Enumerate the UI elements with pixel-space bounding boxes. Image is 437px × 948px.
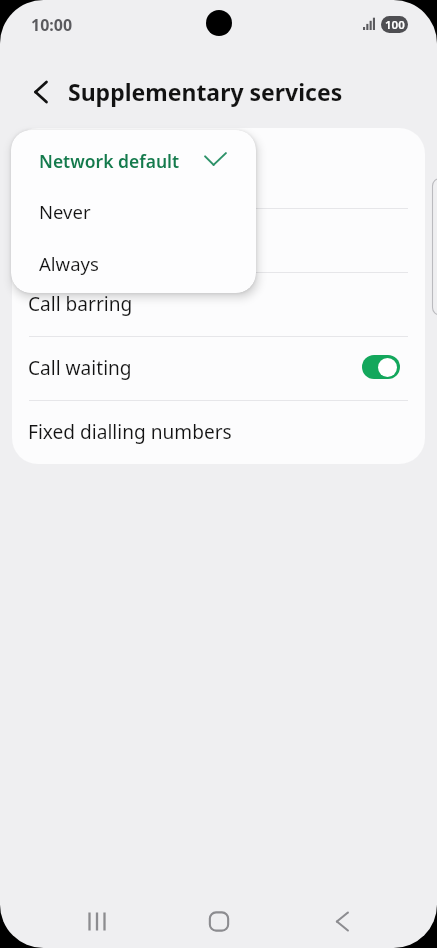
- staticText: Never: [39, 199, 91, 224]
- staticText: Call barring: [28, 291, 133, 317]
- staticText: 100: [385, 17, 405, 33]
- button[interactable]: Home: [197, 894, 241, 948]
- staticText: Fixed dialling numbers: [28, 419, 232, 445]
- button[interactable]: Back: [320, 894, 364, 948]
- button[interactable]: Navigate up: [22, 74, 58, 110]
- button[interactable]: Never: [11, 186, 256, 237]
- staticText: Caller ID: [28, 163, 105, 189]
- button[interactable]: Call forwarding: [12, 208, 425, 272]
- button[interactable]: Call barring: [12, 272, 425, 336]
- button[interactable]: Network default: [11, 135, 256, 186]
- button[interactable]: Call waiting: [12, 336, 425, 400]
- staticText: Always: [39, 251, 99, 276]
- staticText: Network default: [39, 149, 180, 173]
- button[interactable]: Fixed dialling numbers: [12, 400, 425, 464]
- staticText: Call waiting: [28, 355, 132, 381]
- button[interactable]: Caller ID: [12, 144, 425, 208]
- staticText: 10:00: [31, 14, 73, 36]
- button[interactable]: Call waiting toggle: [362, 355, 400, 379]
- staticText: Supplementary services: [68, 76, 343, 107]
- button[interactable]: Always: [11, 238, 256, 289]
- button[interactable]: Recent apps: [75, 894, 119, 948]
